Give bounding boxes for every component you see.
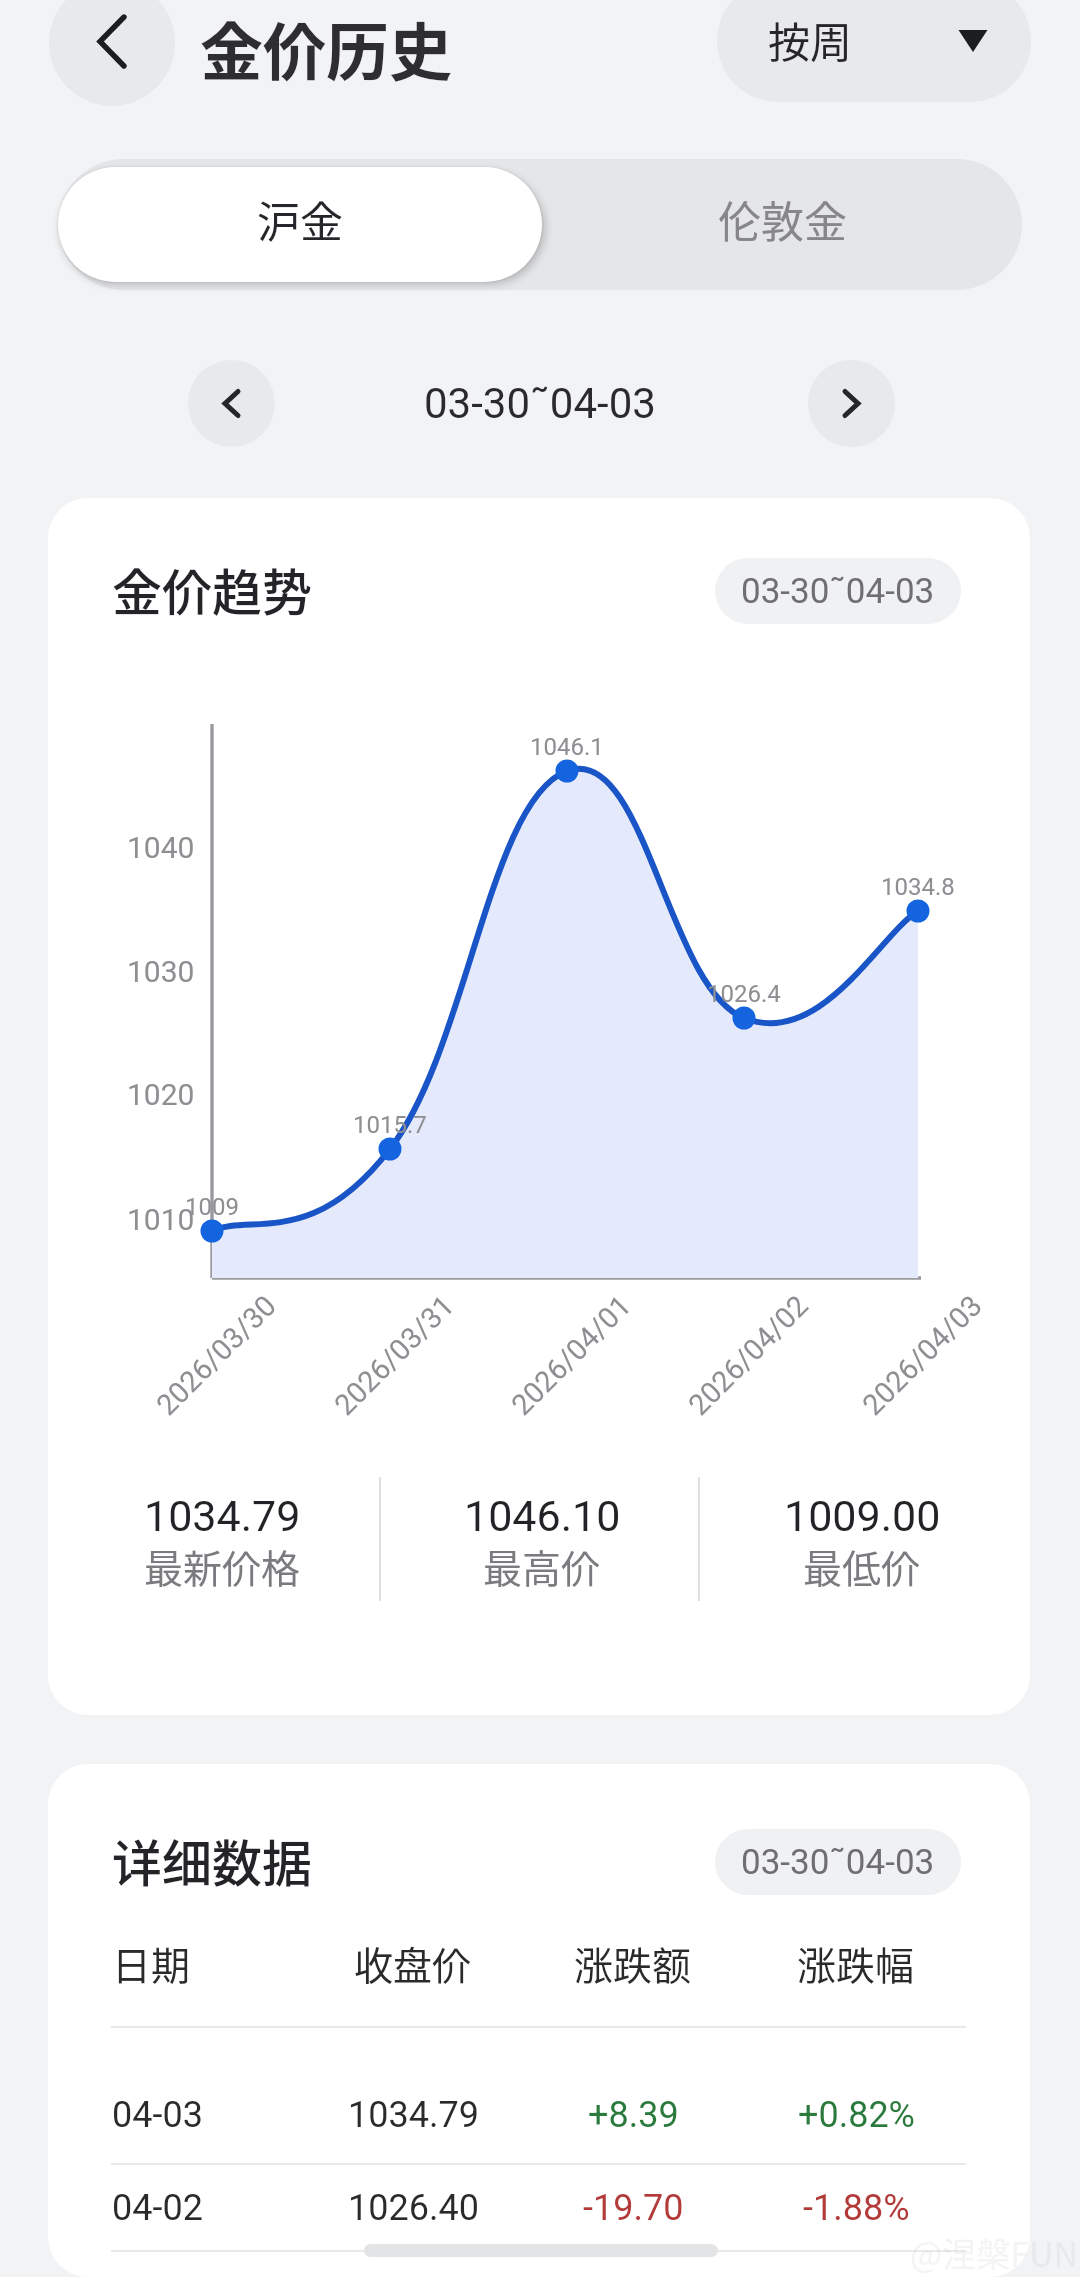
staticText: 沪金 xyxy=(257,188,343,250)
staticText: 最低价 xyxy=(803,1538,921,1594)
staticText: +0.82% xyxy=(798,2094,915,2136)
staticText: +8.39 xyxy=(588,2094,679,2136)
button[interactable]: 伦敦金 xyxy=(542,159,1022,290)
staticText: 伦敦金 xyxy=(718,188,847,250)
staticText: 按周 xyxy=(768,9,853,70)
staticText: 日期 xyxy=(112,1935,191,1991)
staticText: 收盘价 xyxy=(354,1935,472,1991)
staticText: 03-30˜04-03 xyxy=(424,379,656,428)
staticText: 金价趋势 xyxy=(112,553,312,625)
button[interactable]: 按周 xyxy=(717,0,1031,102)
staticText: 最新价格 xyxy=(144,1538,301,1594)
staticText: 04-03 xyxy=(112,2094,203,2136)
button[interactable]: Next week xyxy=(808,360,895,447)
staticText: 1009.00 xyxy=(784,1491,941,1541)
staticText: 1026.40 xyxy=(348,2187,479,2229)
staticText: 最高价 xyxy=(483,1538,601,1594)
staticText: 04-02 xyxy=(112,2187,203,2229)
button[interactable]: 03-30˜04-03 xyxy=(715,558,961,624)
staticText: 03-30˜04-03 xyxy=(741,571,935,612)
button[interactable]: 03-30˜04-03 xyxy=(715,1829,961,1895)
staticText: 详细数据 xyxy=(112,1824,312,1896)
staticText: -19.70 xyxy=(583,2187,684,2229)
staticText: 1034.79 xyxy=(144,1491,301,1541)
button[interactable]: Back xyxy=(49,0,175,106)
staticText: 03-30˜04-03 xyxy=(741,1842,935,1883)
staticText: 1046.10 xyxy=(464,1491,621,1541)
staticText: @涅槃FUN xyxy=(910,2228,1079,2277)
staticText: 涨跌幅 xyxy=(797,1935,915,1991)
staticText: 涨跌额 xyxy=(574,1935,692,1991)
staticText: -1.88% xyxy=(803,2187,910,2229)
button[interactable]: Previous week xyxy=(188,360,275,447)
staticText: 金价历史 xyxy=(200,2,452,93)
button[interactable]: 沪金 xyxy=(58,167,542,282)
staticText: 1034.79 xyxy=(348,2094,479,2136)
